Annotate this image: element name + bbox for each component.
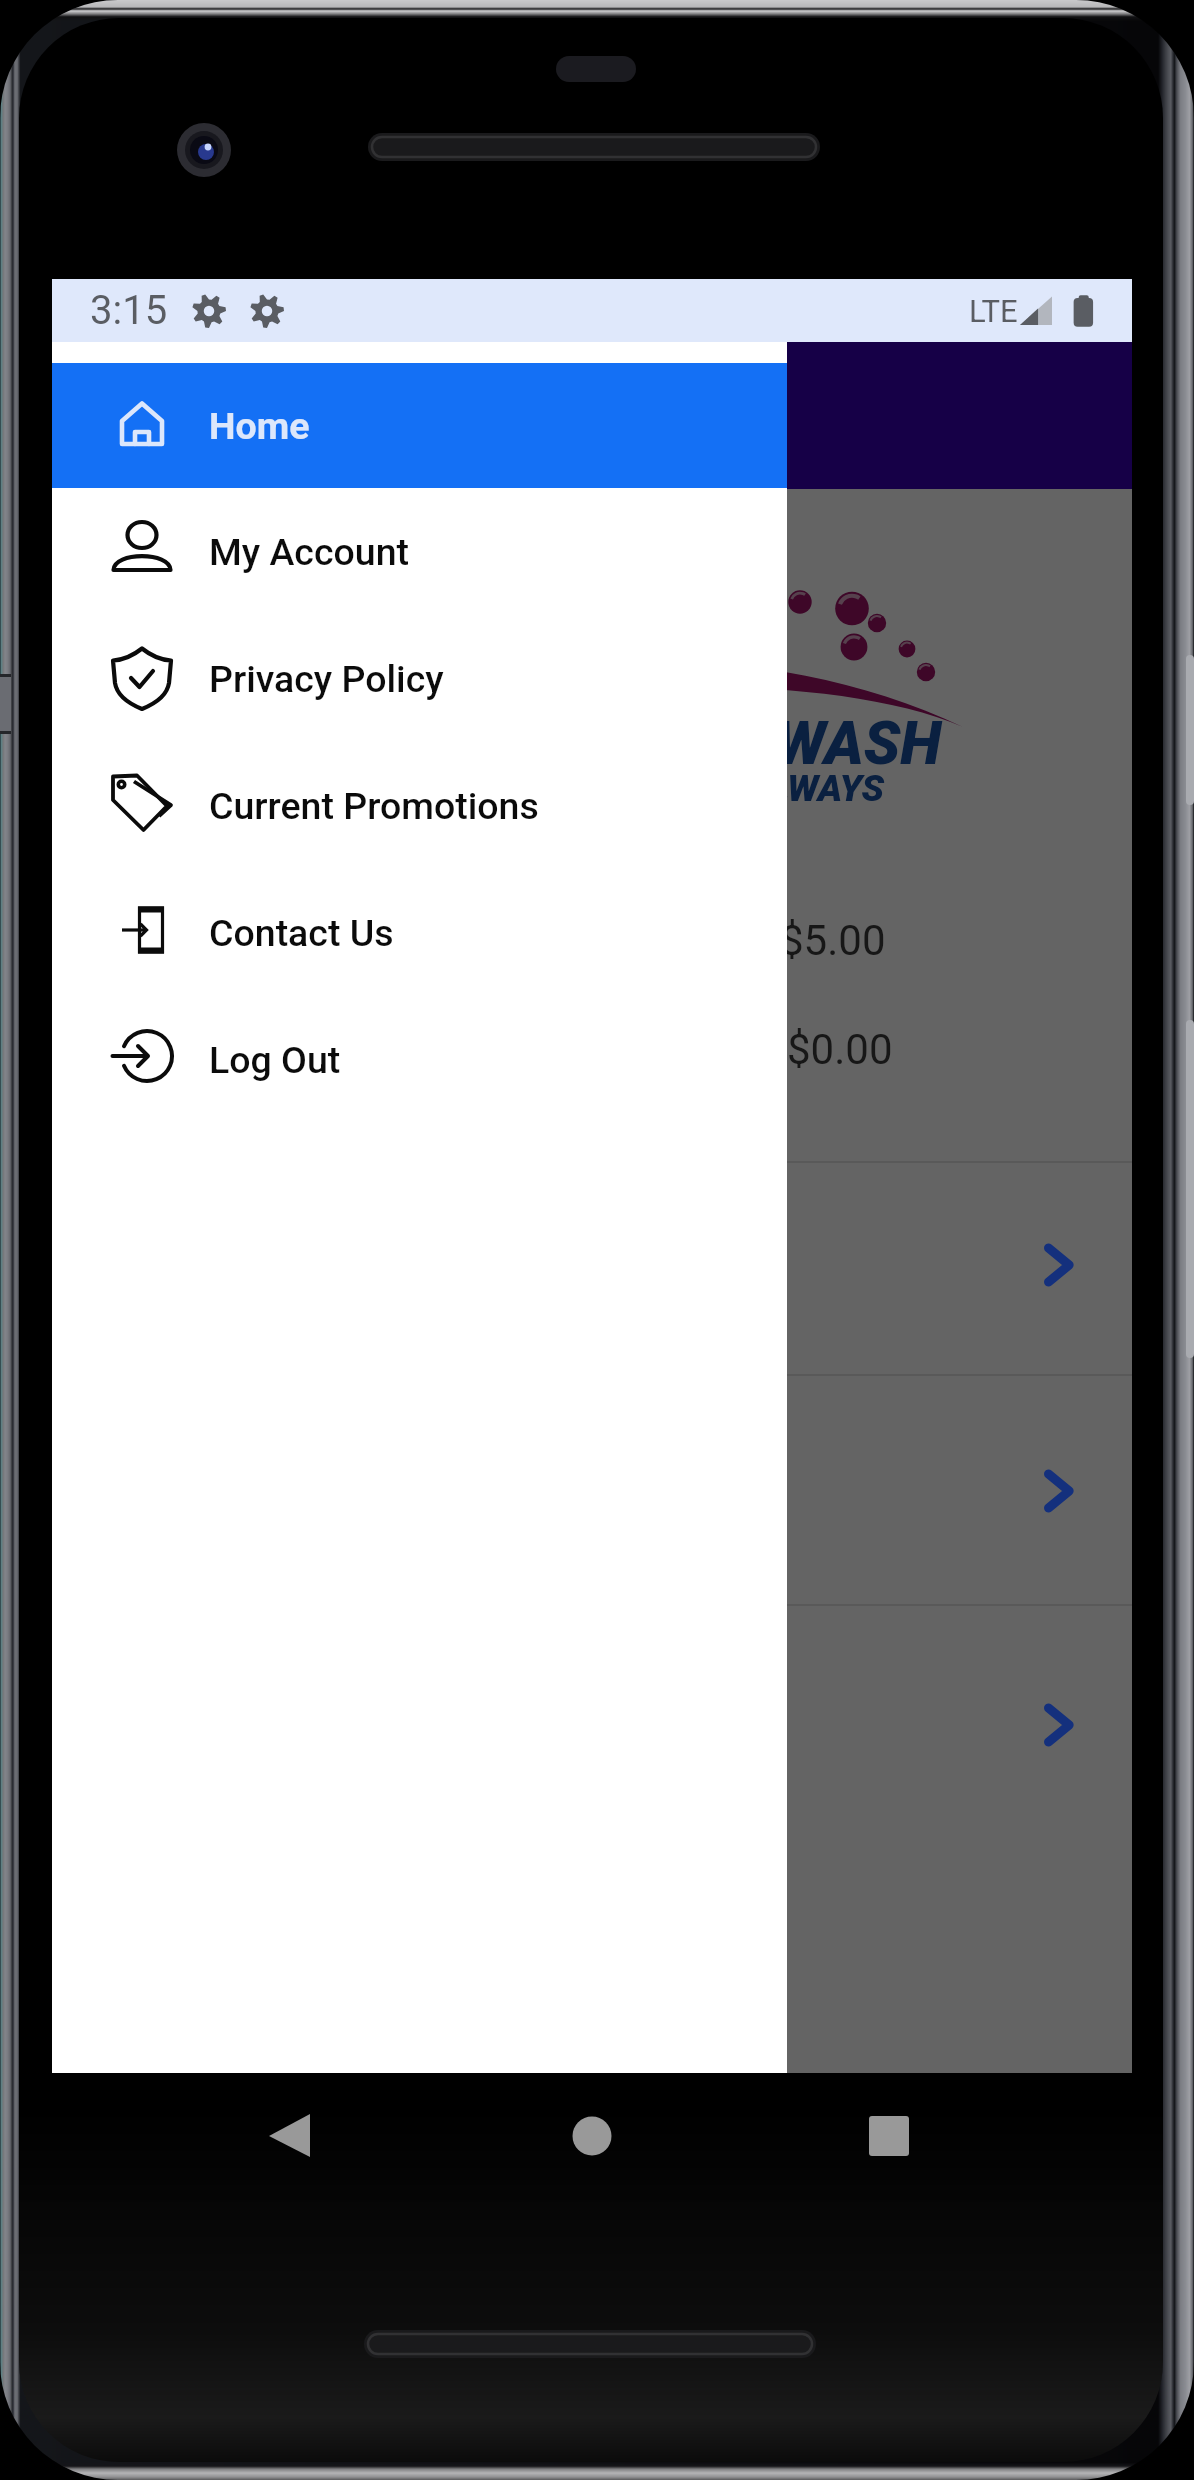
staticText: Rewards Balance (112, 1025, 434, 1074)
button[interactable]: Buy a Car Wash Membership (52, 1604, 1132, 1817)
button[interactable]: Wash History (52, 1374, 1132, 1587)
button[interactable]: Open navigation drawer (74, 364, 178, 468)
staticText: Home (209, 404, 310, 448)
button[interactable]: Current Promotions (52, 742, 787, 869)
staticText: Buy a Monthly Wash Membership (112, 1707, 1012, 1754)
button[interactable]: Privacy Policy (52, 615, 787, 742)
staticText: ALWAYS (745, 767, 1194, 810)
button[interactable]: Home (52, 363, 787, 488)
staticText: Home (202, 389, 326, 443)
staticText: LTE (969, 293, 1018, 329)
button[interactable]: Close navigation drawer (52, 489, 1132, 2073)
staticText: EXPRESS WASH (509, 708, 973, 778)
button[interactable]: Back (190, 2076, 390, 2196)
staticText: Current Promotions (209, 784, 539, 828)
staticText: Contact Us (209, 911, 394, 955)
button[interactable]: Recent apps (790, 2076, 990, 2196)
button[interactable]: Home (492, 2076, 692, 2196)
staticText: My Account (209, 530, 409, 574)
button[interactable]: Buy a Wash (52, 1161, 1132, 1374)
staticText: Log Out (209, 1038, 341, 1082)
staticText: $0.00 (787, 1025, 893, 1074)
staticText: 3:15 (90, 287, 168, 334)
staticText: $5.00 (780, 916, 886, 965)
button[interactable]: My Account (52, 488, 787, 615)
staticText: Privacy Policy (209, 657, 444, 701)
button[interactable]: Log Out (52, 996, 787, 1123)
staticText: Account Balance (112, 916, 428, 965)
button[interactable]: Contact Us (52, 869, 787, 996)
